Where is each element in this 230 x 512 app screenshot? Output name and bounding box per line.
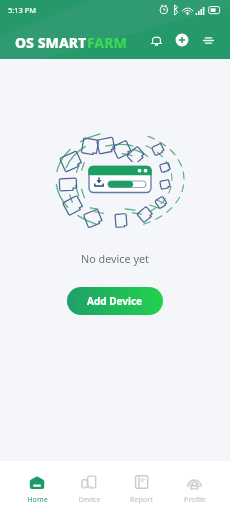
- button[interactable]: Notifications: [144, 28, 168, 52]
- staticText: Report: [130, 494, 153, 504]
- button[interactable]: Add Device: [67, 287, 163, 315]
- staticText: Profile: [184, 494, 206, 504]
- button[interactable]: Device: [63, 461, 115, 512]
- staticText: Device: [78, 494, 101, 504]
- staticText: No device yet: [81, 251, 149, 266]
- button[interactable]: Profile: [168, 461, 221, 512]
- button[interactable]: Add: [170, 28, 194, 52]
- button[interactable]: Report: [115, 461, 168, 512]
- staticText: FARM: [87, 33, 127, 52]
- staticText: 5:13 PM: [8, 5, 37, 15]
- button[interactable]: Menu: [196, 28, 220, 52]
- staticText: Home: [27, 494, 48, 504]
- staticText: Add Device: [87, 294, 143, 308]
- button[interactable]: Home: [11, 461, 63, 512]
- staticText: OS SMART: [15, 33, 87, 52]
